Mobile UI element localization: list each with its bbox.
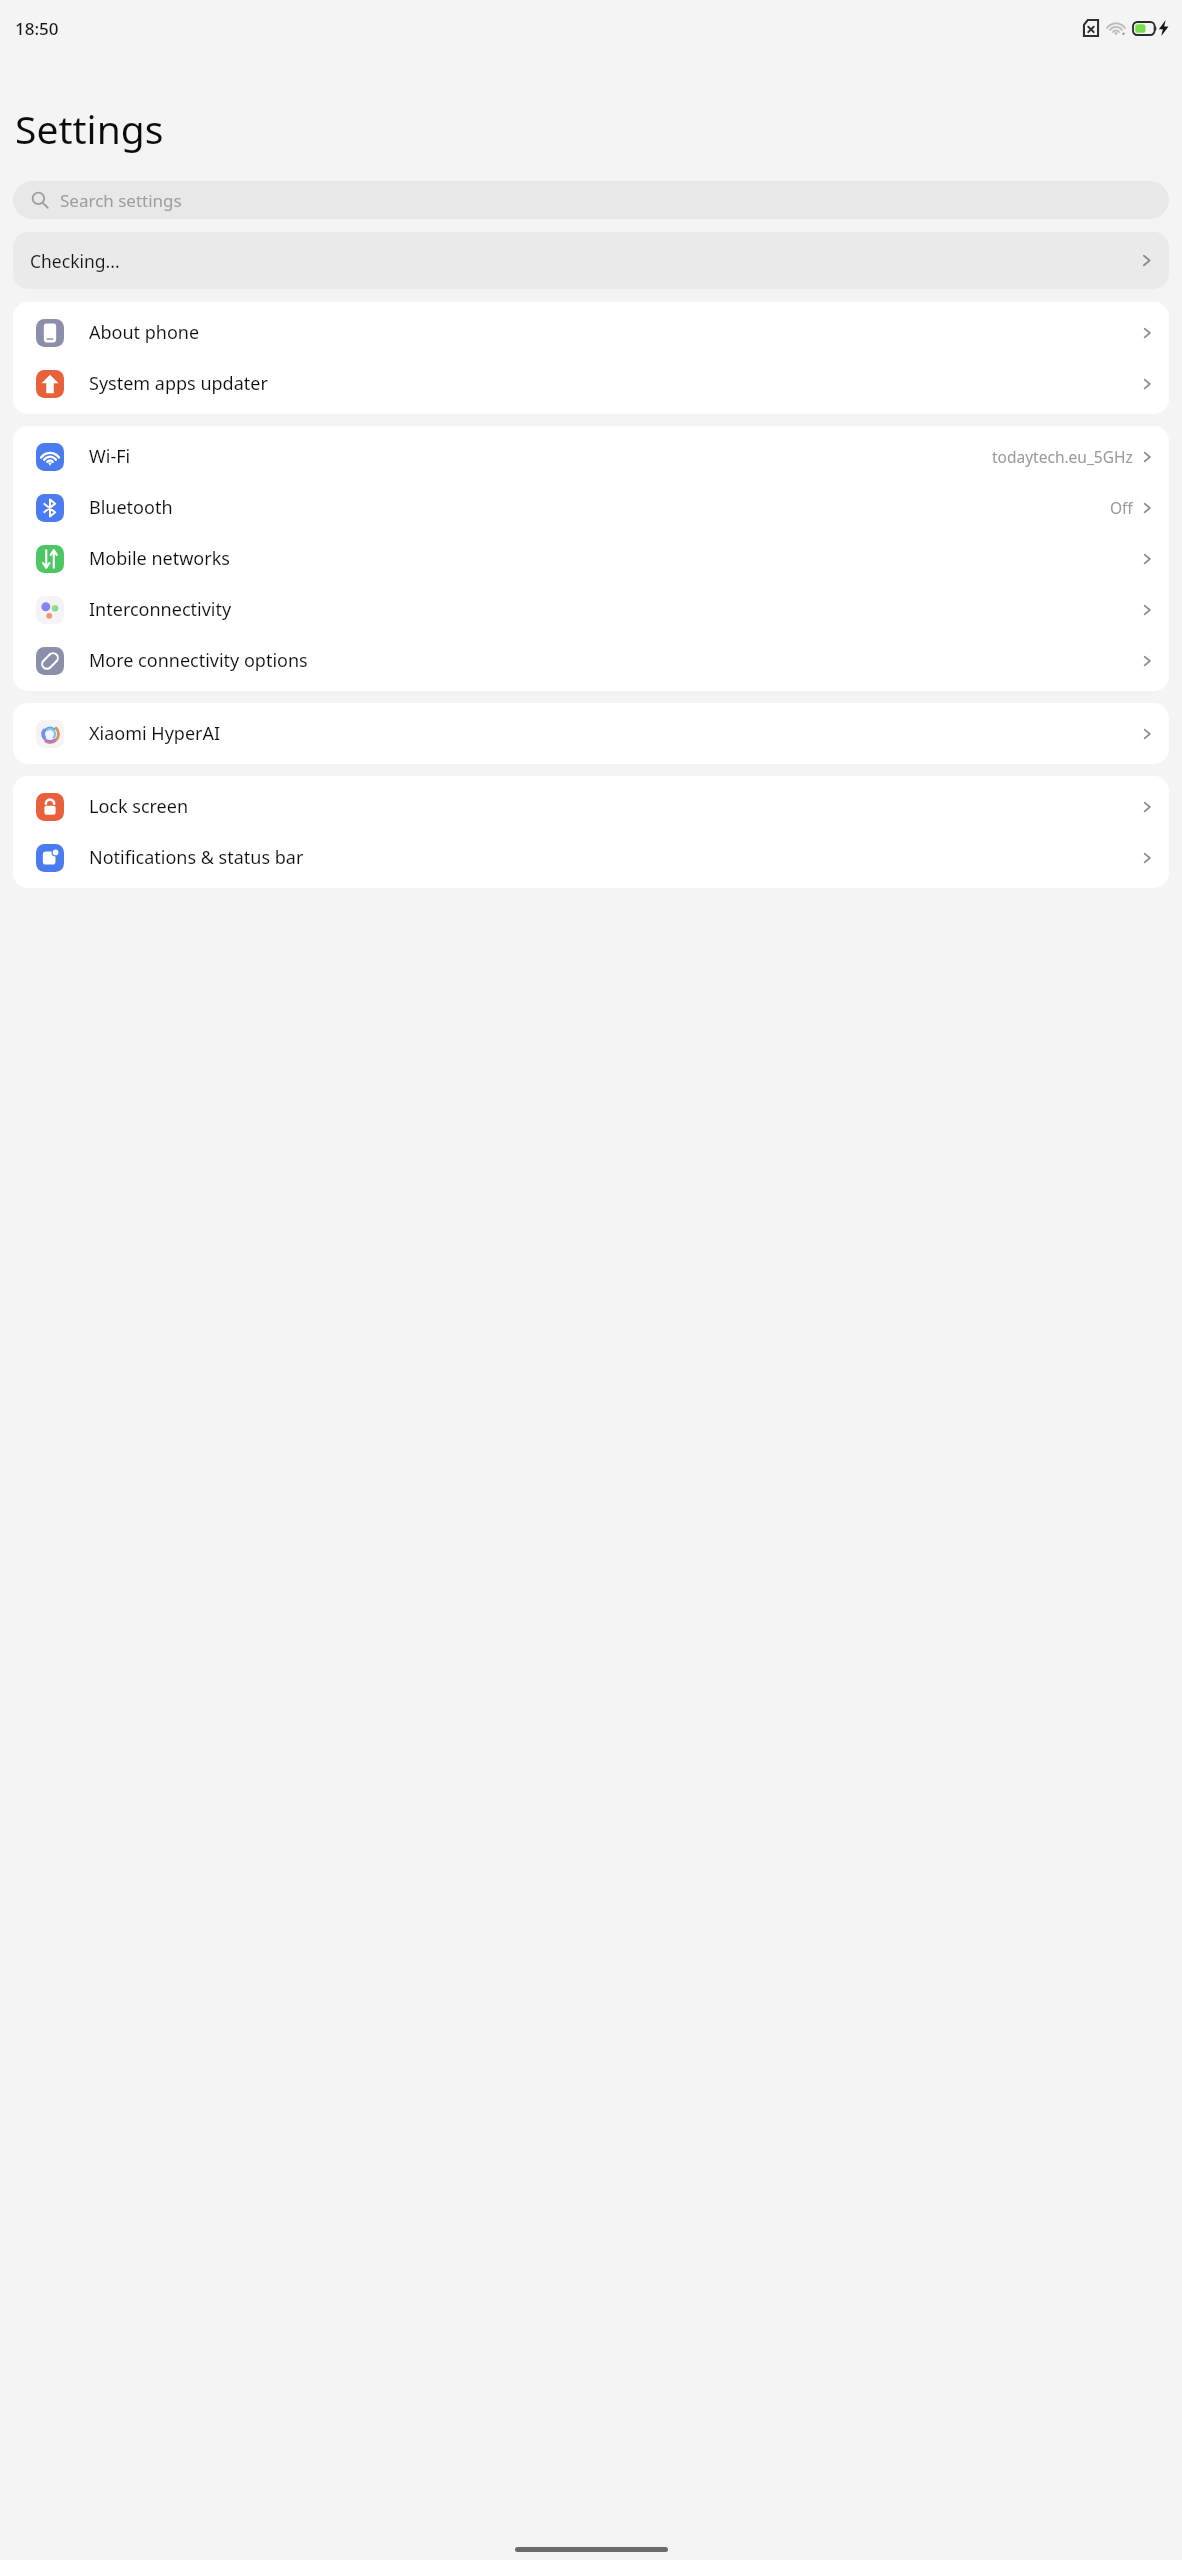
button[interactable]: Mobile networks [13, 533, 1169, 584]
staticText: About phone [89, 320, 200, 345]
staticText: 18:50 [15, 17, 59, 40]
button[interactable]: Lock screen [13, 781, 1169, 832]
staticText: Search settings [60, 189, 182, 212]
staticText: Bluetooth [89, 495, 173, 520]
button[interactable]: System apps updater [13, 358, 1169, 409]
staticText: Notifications & status bar [89, 845, 304, 870]
staticText: Checking... [30, 249, 120, 273]
staticText: Lock screen [89, 794, 189, 819]
staticText: todaytech.eu_5GHz [992, 446, 1133, 467]
staticText: Off [1110, 497, 1133, 518]
staticText: Wi-Fi [89, 444, 131, 469]
button[interactable]: Checking... [13, 232, 1169, 289]
staticText: Interconnectivity [89, 597, 232, 622]
staticText: More connectivity options [89, 648, 308, 673]
staticText: Settings [15, 102, 164, 155]
button[interactable]: Bluetooth [13, 482, 1169, 533]
button[interactable]: Search settings [13, 181, 1169, 219]
staticText: Xiaomi HyperAI [89, 721, 221, 746]
button[interactable]: About phone [13, 307, 1169, 358]
button[interactable]: Xiaomi HyperAI [13, 708, 1169, 759]
button[interactable]: More connectivity options [13, 635, 1169, 686]
button[interactable]: Notifications & status bar [13, 832, 1169, 883]
staticText: System apps updater [89, 371, 268, 396]
button[interactable]: Interconnectivity [13, 584, 1169, 635]
staticText: Mobile networks [89, 546, 230, 571]
button[interactable]: Wi-Fi [13, 431, 1169, 482]
